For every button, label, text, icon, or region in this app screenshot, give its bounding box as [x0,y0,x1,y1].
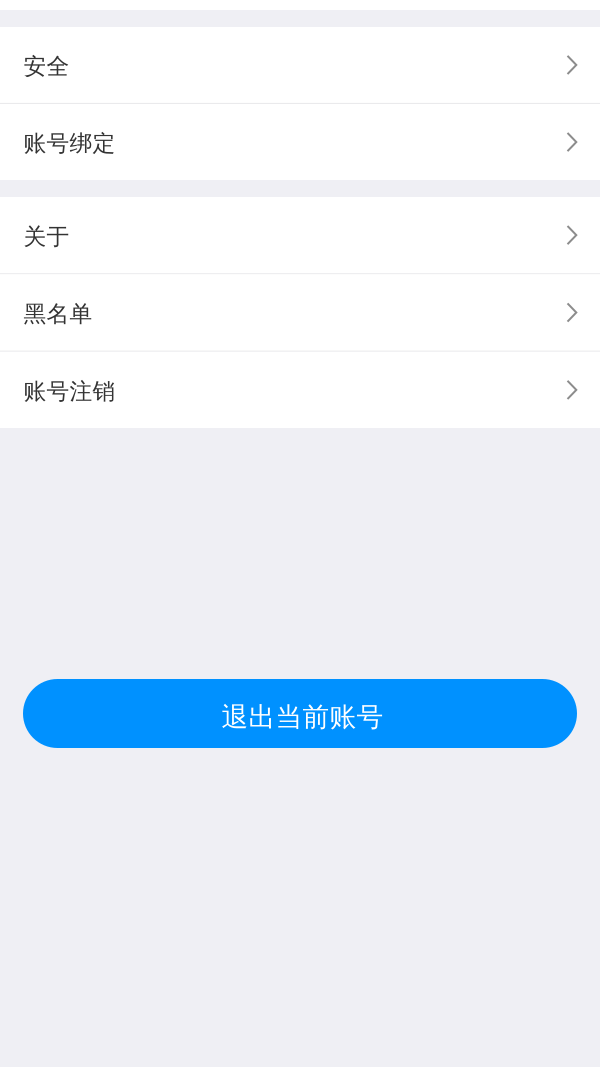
staticText: 安全 [23,52,69,80]
staticText: 关于 [23,223,69,250]
button[interactable]: 退出当前账号 [23,679,577,748]
button[interactable]: 账号注销 [0,352,600,428]
button[interactable]: 账号绑定 [0,104,600,180]
staticText: 账号绑定 [23,130,115,157]
button[interactable]: 黑名单 [0,274,600,351]
staticText: 账号注销 [23,377,115,405]
button[interactable]: 安全 [0,27,600,103]
staticText: 黑名单 [23,300,92,328]
staticText: 退出当前账号 [221,701,383,733]
button[interactable]: 关于 [0,197,600,273]
